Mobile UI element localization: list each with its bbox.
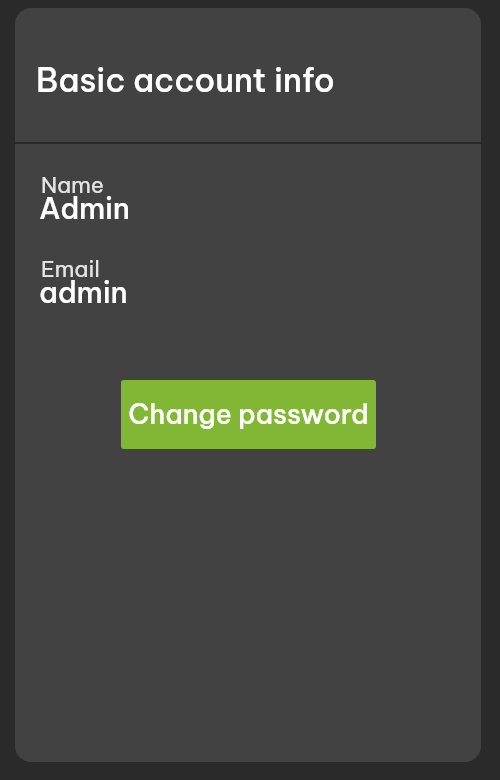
staticText: Name [41, 171, 105, 199]
staticText: Change password [128, 397, 369, 431]
staticText: Admin [39, 190, 130, 227]
staticText: admin [39, 274, 128, 311]
staticText: Basic account info [36, 59, 335, 100]
button[interactable]: Change password [121, 380, 376, 449]
staticText: Email [41, 255, 100, 283]
